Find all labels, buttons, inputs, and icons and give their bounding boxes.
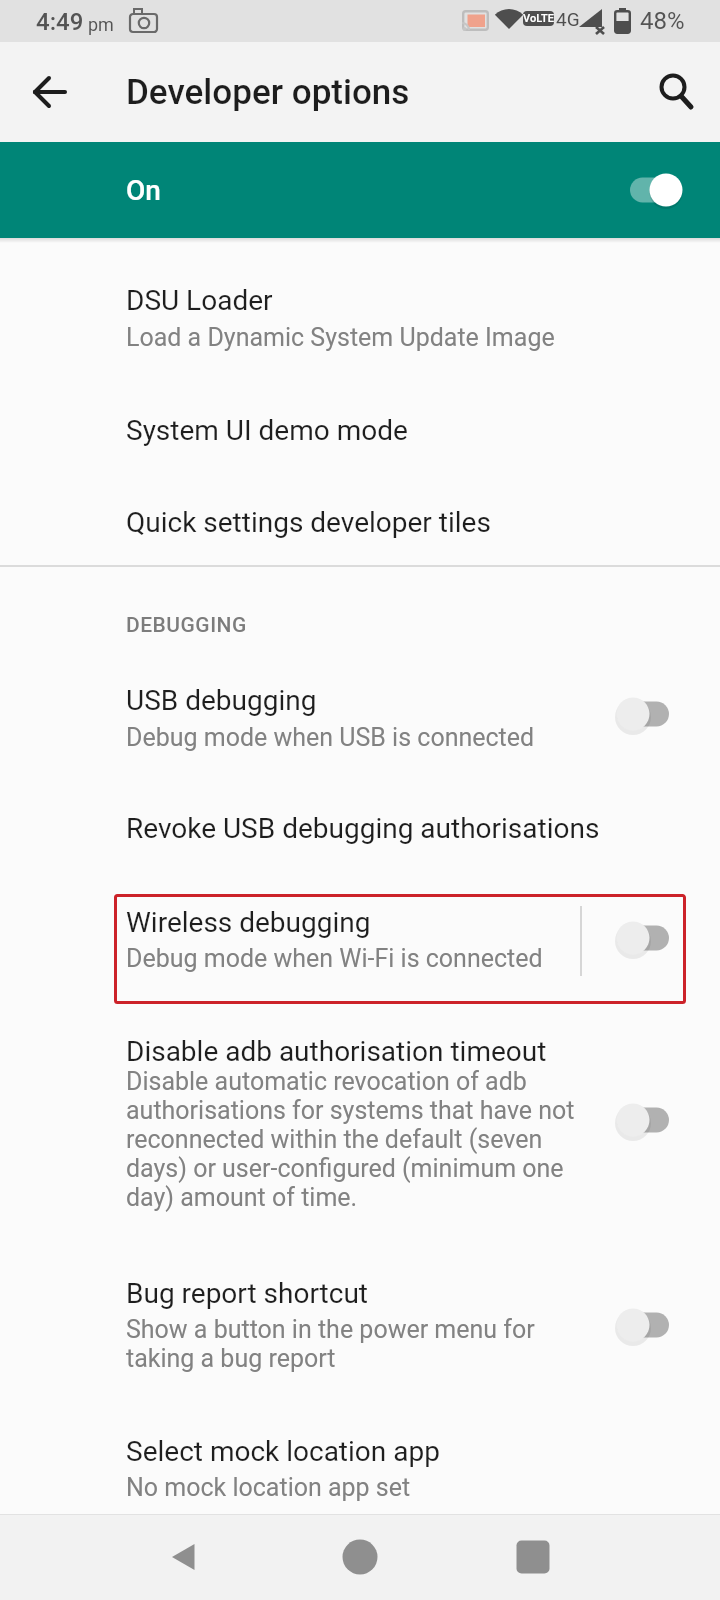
button[interactable] bbox=[18, 60, 82, 124]
staticText: System UI demo mode bbox=[126, 414, 408, 447]
button[interactable]: DSU Loader bbox=[0, 248, 720, 382]
staticText: pm bbox=[88, 14, 114, 35]
button[interactable]: Wireless debugging bbox=[0, 874, 720, 1006]
button[interactable] bbox=[312, 1514, 408, 1600]
button[interactable]: On bbox=[0, 142, 720, 238]
button[interactable]: Quick settings developer tiles bbox=[0, 476, 720, 568]
staticText: Wireless debugging bbox=[126, 906, 371, 939]
button[interactable]: Select mock location app bbox=[0, 1405, 720, 1514]
button[interactable]: USB debugging bbox=[0, 652, 720, 784]
staticText: Load a Dynamic System Update Image bbox=[126, 323, 555, 352]
button[interactable]: Revoke USB debugging authorisations bbox=[0, 784, 720, 876]
button[interactable] bbox=[644, 60, 708, 124]
staticText: Quick settings developer tiles bbox=[126, 506, 491, 539]
staticText: 48% bbox=[640, 7, 685, 35]
button[interactable]: Bug report shortcut bbox=[0, 1247, 720, 1381]
staticText: Select mock location app bbox=[126, 1435, 440, 1468]
staticText: DSU Loader bbox=[126, 284, 273, 317]
staticText: On bbox=[126, 174, 161, 207]
staticText: Disable adb authorisation timeout bbox=[126, 1035, 547, 1068]
button[interactable]: Disable adb authorisation timeout bbox=[0, 1004, 720, 1228]
staticText: VoLTE bbox=[523, 12, 554, 25]
staticText: Developer options bbox=[126, 72, 410, 113]
button[interactable] bbox=[485, 1514, 581, 1600]
staticText: DEBUGGING bbox=[126, 613, 247, 638]
staticText: 4G bbox=[556, 8, 580, 30]
button[interactable]: System UI demo mode bbox=[0, 382, 720, 476]
button[interactable] bbox=[135, 1514, 231, 1600]
staticText: Show a button in the power menu for taki… bbox=[126, 1315, 535, 1373]
staticText: Debug mode when Wi-Fi is connected bbox=[126, 944, 543, 973]
staticText: USB debugging bbox=[126, 684, 317, 717]
staticText: Debug mode when USB is connected bbox=[126, 723, 535, 752]
staticText: Bug report shortcut bbox=[126, 1277, 369, 1310]
staticText: No mock location app set bbox=[126, 1473, 411, 1502]
staticText: 4:49 bbox=[36, 8, 84, 36]
staticText: Disable automatic revocation of adb auth… bbox=[126, 1067, 575, 1212]
staticText: Revoke USB debugging authorisations bbox=[126, 812, 600, 845]
